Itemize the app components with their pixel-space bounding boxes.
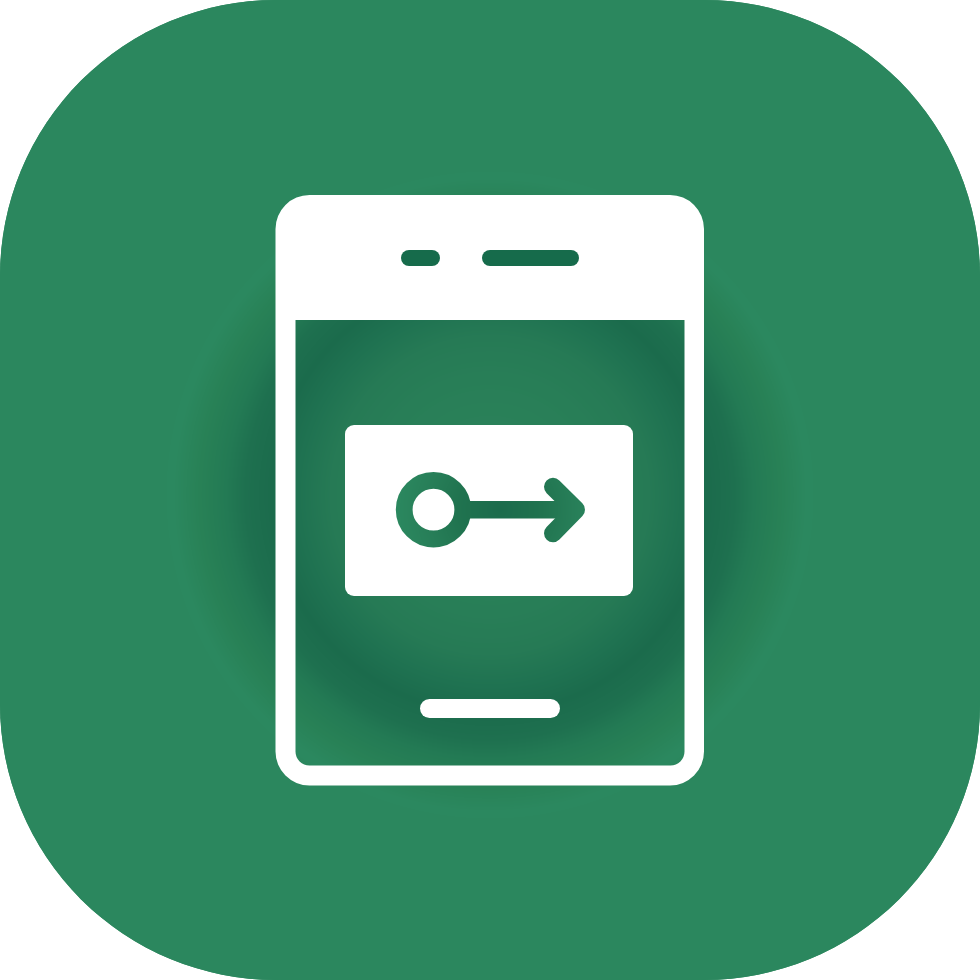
button[interactable]: Unlock with access key [345, 425, 633, 596]
button[interactable]: Mobile authentication app icon [0, 0, 980, 980]
